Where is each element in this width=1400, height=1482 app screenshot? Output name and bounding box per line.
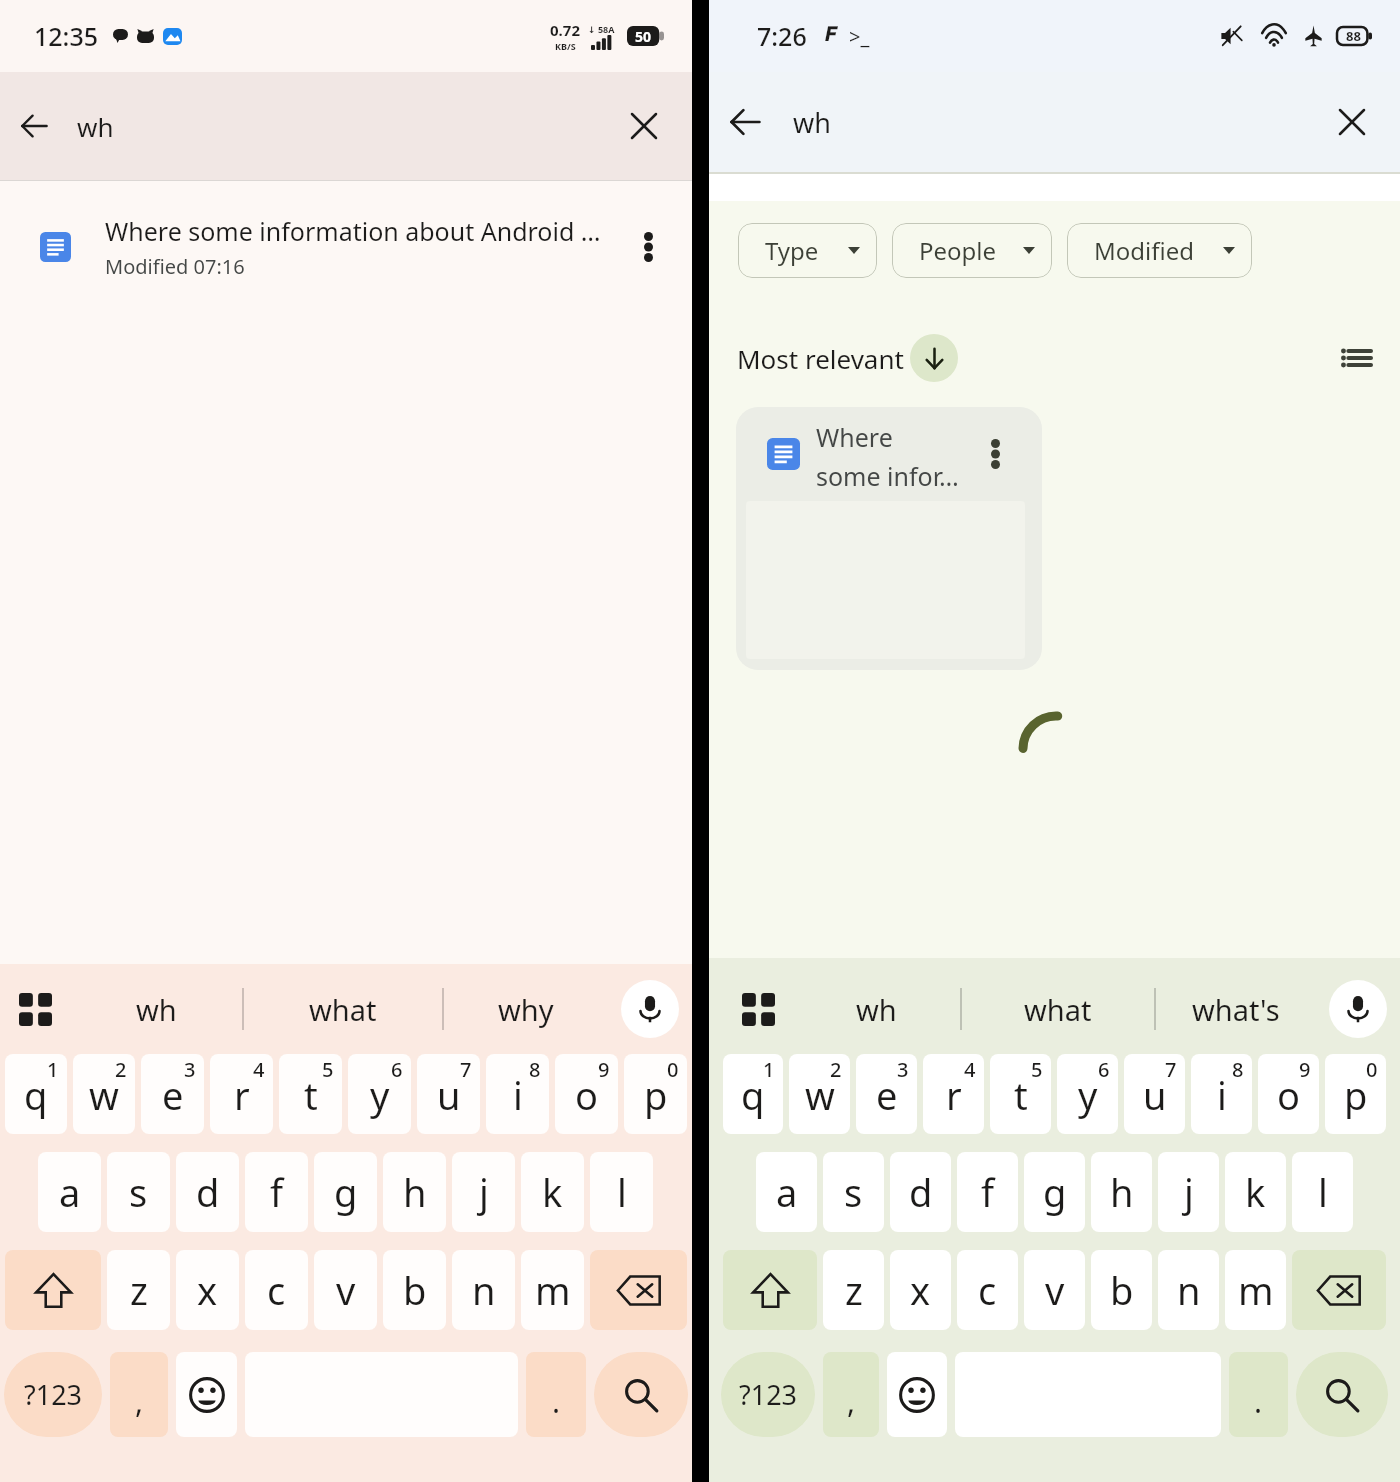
- button[interactable]: q: [723, 1054, 783, 1134]
- button[interactable]: ,: [110, 1352, 168, 1437]
- button[interactable]: h: [383, 1152, 446, 1232]
- button[interactable]: Backspace: [590, 1250, 687, 1330]
- button[interactable]: Clear search: [1316, 86, 1388, 158]
- button[interactable]: Search: [594, 1352, 688, 1437]
- button[interactable]: z: [107, 1250, 170, 1330]
- staticText: .: [1254, 1381, 1263, 1422]
- button[interactable]: n: [452, 1250, 515, 1330]
- button[interactable]: e: [141, 1054, 204, 1134]
- button[interactable]: o: [1258, 1054, 1319, 1134]
- button[interactable]: b: [1091, 1250, 1152, 1330]
- button[interactable]: q: [5, 1054, 67, 1134]
- button[interactable]: Modified: [1067, 223, 1252, 278]
- button[interactable]: g: [314, 1152, 377, 1232]
- button[interactable]: d: [890, 1152, 951, 1232]
- button[interactable]: why: [444, 964, 608, 1054]
- button[interactable]: c: [245, 1250, 308, 1330]
- button[interactable]: o: [555, 1054, 618, 1134]
- button[interactable]: wh: [70, 964, 242, 1054]
- button[interactable]: w: [73, 1054, 135, 1134]
- button[interactable]: w: [789, 1054, 850, 1134]
- button[interactable]: f: [957, 1152, 1018, 1232]
- button[interactable]: h: [1091, 1152, 1152, 1232]
- button[interactable]: m: [1225, 1250, 1286, 1330]
- button[interactable]: Most relevant: [737, 334, 958, 382]
- button[interactable]: l: [1292, 1152, 1353, 1232]
- button[interactable]: r: [210, 1054, 273, 1134]
- staticText: Type: [765, 234, 819, 267]
- button[interactable]: .: [1229, 1352, 1288, 1437]
- button[interactable]: Voice input: [1329, 980, 1387, 1038]
- button[interactable]: Keyboard toolbar: [723, 964, 793, 1054]
- button[interactable]: u: [417, 1054, 480, 1134]
- button[interactable]: f: [245, 1152, 308, 1232]
- button[interactable]: ,: [823, 1352, 879, 1437]
- button[interactable]: Switch to list view: [1331, 332, 1383, 384]
- button[interactable]: ?123: [721, 1352, 815, 1437]
- button[interactable]: Back: [709, 86, 781, 158]
- button[interactable]: Shift: [723, 1250, 817, 1330]
- button[interactable]: More options: [620, 219, 676, 275]
- button[interactable]: p: [1325, 1054, 1386, 1134]
- button[interactable]: b: [383, 1250, 446, 1330]
- button[interactable]: Where some infor…: [736, 407, 1042, 670]
- button[interactable]: what: [244, 964, 442, 1054]
- button[interactable]: p: [624, 1054, 687, 1134]
- button[interactable]: More options: [973, 432, 1017, 476]
- button[interactable]: s: [107, 1152, 170, 1232]
- button[interactable]: r: [923, 1054, 984, 1134]
- button[interactable]: m: [521, 1250, 584, 1330]
- button[interactable]: Clear search: [610, 92, 678, 160]
- button[interactable]: c: [957, 1250, 1018, 1330]
- button[interactable]: a: [38, 1152, 101, 1232]
- button[interactable]: a: [756, 1152, 817, 1232]
- button[interactable]: Shift: [5, 1250, 101, 1330]
- button[interactable]: s: [823, 1152, 884, 1232]
- button[interactable]: Emoji: [887, 1352, 947, 1437]
- button[interactable]: v: [1024, 1250, 1085, 1330]
- button[interactable]: u: [1124, 1054, 1185, 1134]
- button[interactable]: i: [486, 1054, 549, 1134]
- button[interactable]: ?123: [4, 1352, 102, 1437]
- button[interactable]: y: [1057, 1054, 1118, 1134]
- button[interactable]: People: [892, 223, 1052, 278]
- button[interactable]: d: [176, 1152, 239, 1232]
- button[interactable]: Backspace: [1292, 1250, 1386, 1330]
- button[interactable]: z: [823, 1250, 884, 1330]
- button[interactable]: x: [890, 1250, 951, 1330]
- button[interactable]: y: [348, 1054, 411, 1134]
- button[interactable]: Emoji: [176, 1352, 237, 1437]
- button[interactable]: g: [1024, 1152, 1085, 1232]
- button[interactable]: v: [314, 1250, 377, 1330]
- button[interactable]: Keyboard toolbar: [0, 964, 70, 1054]
- button[interactable]: .: [526, 1352, 586, 1437]
- button[interactable]: k: [1225, 1152, 1286, 1232]
- staticText: r: [946, 1069, 962, 1121]
- button[interactable]: i: [1191, 1054, 1252, 1134]
- button[interactable]: what: [962, 964, 1154, 1054]
- button[interactable]: n: [1158, 1250, 1219, 1330]
- button[interactable]: t: [990, 1054, 1051, 1134]
- button[interactable]: what's: [1156, 964, 1316, 1054]
- button[interactable]: x: [176, 1250, 239, 1330]
- button[interactable]: Search: [1296, 1352, 1388, 1437]
- button[interactable]: Back: [0, 92, 68, 160]
- button[interactable]: j: [1158, 1152, 1219, 1232]
- button[interactable]: wh: [793, 964, 960, 1054]
- button[interactable]: j: [452, 1152, 515, 1232]
- button[interactable]: t: [279, 1054, 342, 1134]
- button[interactable]: Type: [738, 223, 877, 278]
- staticText: People: [919, 234, 997, 267]
- button[interactable]: l: [590, 1152, 653, 1232]
- button[interactable]: Voice input: [621, 980, 679, 1038]
- button[interactable]: e: [856, 1054, 917, 1134]
- staticText: Most relevant: [737, 341, 904, 376]
- staticText: ?123: [739, 1376, 798, 1413]
- staticText: v: [336, 1264, 356, 1316]
- button[interactable]: Where some information about Android …: [0, 181, 692, 313]
- staticText: a: [59, 1166, 81, 1218]
- button[interactable]: k: [521, 1152, 584, 1232]
- staticText: c: [978, 1264, 997, 1316]
